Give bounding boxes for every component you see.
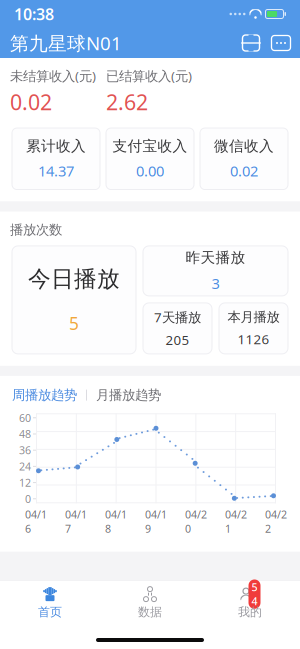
staticText: 2.62 [106,88,148,116]
button[interactable]: 扫一扫 [236,29,266,57]
staticText: 04/21 [225,507,247,536]
staticText: 48 [19,427,31,441]
staticText: 微信收入 [214,137,274,155]
staticText: 24 [19,459,31,473]
staticText: 0.00 [136,161,164,181]
staticText: 04/22 [265,507,287,536]
button[interactable]: 7天播放 [143,303,212,354]
staticText: 04/20 [185,507,207,536]
staticText: 04/18 [105,507,127,536]
button[interactable]: 周播放趋势 [12,387,77,403]
staticText: 0 [25,492,31,506]
button[interactable]: 昨天播放 [143,246,288,296]
staticText: 04/19 [145,507,167,536]
staticText: 1126 [237,330,269,348]
staticText: 04/17 [65,507,87,536]
staticText: 本月播放 [227,309,279,325]
staticText: 60 [19,411,31,425]
staticText: 0.02 [230,161,258,181]
staticText: 205 [165,331,189,349]
staticText: 昨天播放 [185,249,245,267]
staticText: 36 [19,443,31,457]
staticText: 5 [69,312,79,335]
button[interactable]: 54 [200,581,300,625]
button[interactable]: 月播放趋势 [96,387,161,403]
staticText: 12 [19,475,31,490]
staticText: 我的 [238,605,262,619]
button[interactable]: 首页 [0,581,100,625]
staticText: 第九星球N01 [10,31,122,55]
button[interactable]: 消息 [266,29,296,57]
button[interactable]: 本月播放 [219,303,288,354]
staticText: 首页 [38,605,62,619]
staticText: 支付宝收入 [112,137,187,155]
button[interactable]: 累计收入 [12,128,100,189]
staticText: 播放次数 [10,221,62,238]
button[interactable]: 微信收入 [200,128,288,189]
button[interactable]: 数据 [100,581,200,625]
staticText: 月播放趋势 [96,387,161,403]
staticText: 10:38 [14,3,54,25]
staticText: 已结算收入(元) [106,67,192,85]
staticText: 累计收入 [26,137,86,155]
staticText: 54 [251,580,257,608]
staticText: 3 [211,274,219,293]
staticText: 未结算收入(元) [10,67,96,85]
staticText: 04/16 [25,507,47,536]
button[interactable]: 支付宝收入 [106,128,194,189]
staticText: 14.37 [38,161,74,181]
staticText: 0.02 [10,88,52,116]
staticText: 今日播放 [28,265,120,293]
staticText: 7天播放 [154,308,201,326]
button[interactable]: 今日播放 [12,246,136,354]
staticText: 数据 [138,605,162,619]
staticText: 周播放趋势 [12,387,77,403]
